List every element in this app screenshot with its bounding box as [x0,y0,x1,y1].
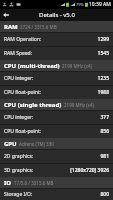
staticText: [1280x720] 3926 [70,167,109,174]
staticText: 2D graphics: [4,153,34,160]
staticText: 2199 MHz (x4) [62,63,92,69]
button[interactable]: 3D graphics: [0,164,113,177]
staticText: Details - v5.0 [39,11,75,19]
button[interactable]: GPU [0,138,113,149]
staticText: 2724 / 3315.6 MB [20,24,57,30]
button[interactable]: CPU integer: [0,111,113,124]
staticText: RAM [4,23,18,31]
button[interactable]: Back [0,9,12,21]
staticText: 1299 [97,36,109,43]
button[interactable]: RAM Speed: [0,47,113,60]
staticText: 2199 MHz (x4) [64,102,94,108]
button[interactable]: CPU float-point: [0,125,113,138]
staticText: 1235 [97,75,109,82]
staticText: 981 [100,153,109,160]
staticText: Adreno (TM) 330 [19,141,54,147]
staticText: Storage I/O: [4,191,33,198]
staticText: CPU float-point: [4,89,42,96]
staticText: 1988 [97,89,109,96]
staticText: CPU (multi-thread) [4,62,60,70]
button[interactable]: CPU integer: [0,72,113,85]
staticText: CPU (single thread) [4,101,62,109]
button[interactable]: CPU (multi-thread) [0,60,113,71]
staticText: 377 [100,114,109,121]
button[interactable]: Storage I/O: [0,189,113,200]
staticText: CPU integer: [4,75,34,82]
staticText: RAM Operation: [4,36,42,43]
staticText: 79% [76,2,84,7]
button[interactable]: RAM [0,21,113,32]
staticText: GPU [4,140,17,148]
staticText: 1545 [97,50,109,57]
staticText: 3D graphics: [4,167,34,174]
staticText: CPU float-point: [4,128,42,135]
button[interactable]: CPU float-point: [0,86,113,99]
staticText: IO [4,179,12,187]
staticText: 10:39 AM [89,1,111,8]
staticText: 17/5.6 / 3315.6 MB [14,180,54,186]
staticText: CPU integer: [4,114,34,121]
button[interactable]: CPU (single thread) [0,99,113,110]
button[interactable]: IO [0,177,113,188]
staticText: 800 [100,191,109,198]
button[interactable]: 2D graphics: [0,150,113,163]
staticText: 856 [100,128,109,135]
button[interactable]: RAM Operation: [0,33,113,46]
staticText: RAM Speed: [4,50,33,57]
